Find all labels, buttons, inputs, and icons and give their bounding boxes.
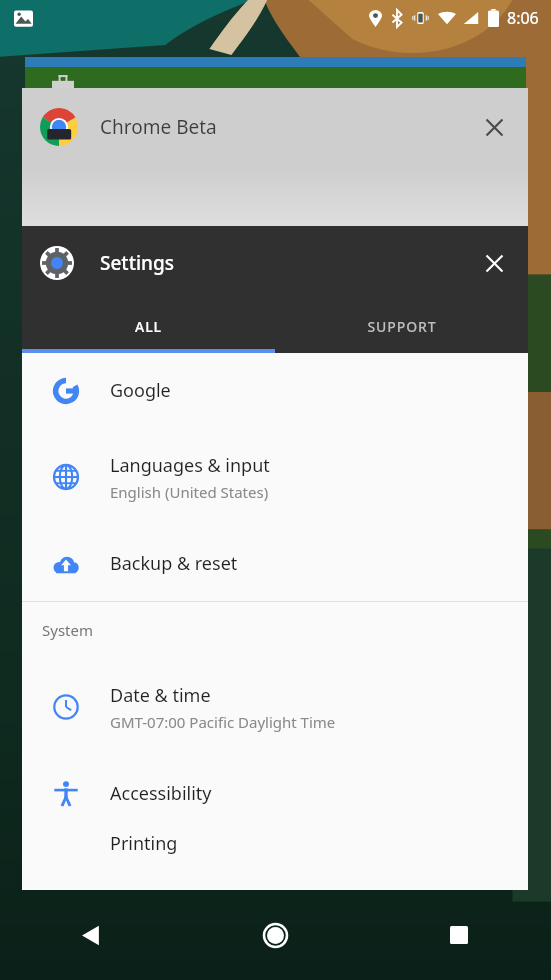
staticText: Printing <box>110 831 178 856</box>
staticText: Languages & input <box>110 453 270 478</box>
staticText: Accessibility <box>110 781 212 806</box>
staticText: English (United States) <box>110 482 269 502</box>
staticText: ALL <box>135 317 162 336</box>
button[interactable]: Printing <box>22 831 528 871</box>
staticText: Settings <box>100 250 174 276</box>
button[interactable]: SUPPORT <box>275 300 528 353</box>
button[interactable]: Close Chrome Beta <box>470 103 518 151</box>
staticText: GMT-07:00 Pacific Daylight Time <box>110 712 336 732</box>
staticText: System <box>42 620 93 640</box>
button[interactable]: ALL <box>22 300 275 353</box>
button[interactable]: Languages & input <box>22 428 528 526</box>
button[interactable]: Home <box>183 890 367 980</box>
button[interactable]: Close Settings <box>470 239 518 287</box>
button[interactable]: Chrome Beta <box>22 88 528 226</box>
staticText: Google <box>110 378 171 403</box>
staticText: Backup & reset <box>110 551 238 576</box>
button[interactable] <box>25 67 526 89</box>
button[interactable]: Recents <box>367 890 551 980</box>
button[interactable]: Backup & reset <box>22 526 528 601</box>
button[interactable]: Accessibility <box>22 756 528 831</box>
staticText: SUPPORT <box>367 317 437 336</box>
button[interactable]: Date & time <box>22 658 528 756</box>
staticText: Chrome Beta <box>100 114 217 140</box>
button[interactable]: Google <box>22 353 528 428</box>
staticText: Date & time <box>110 683 211 708</box>
button[interactable]: Back <box>0 890 183 980</box>
staticText: 8:06 <box>507 7 539 29</box>
